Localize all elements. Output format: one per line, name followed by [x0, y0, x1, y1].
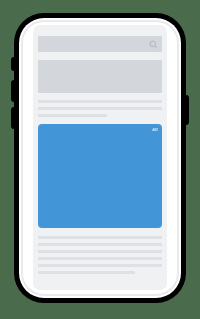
button[interactable]: AD	[38, 124, 162, 228]
staticText: AD	[152, 127, 158, 132]
other: Search	[149, 40, 158, 49]
